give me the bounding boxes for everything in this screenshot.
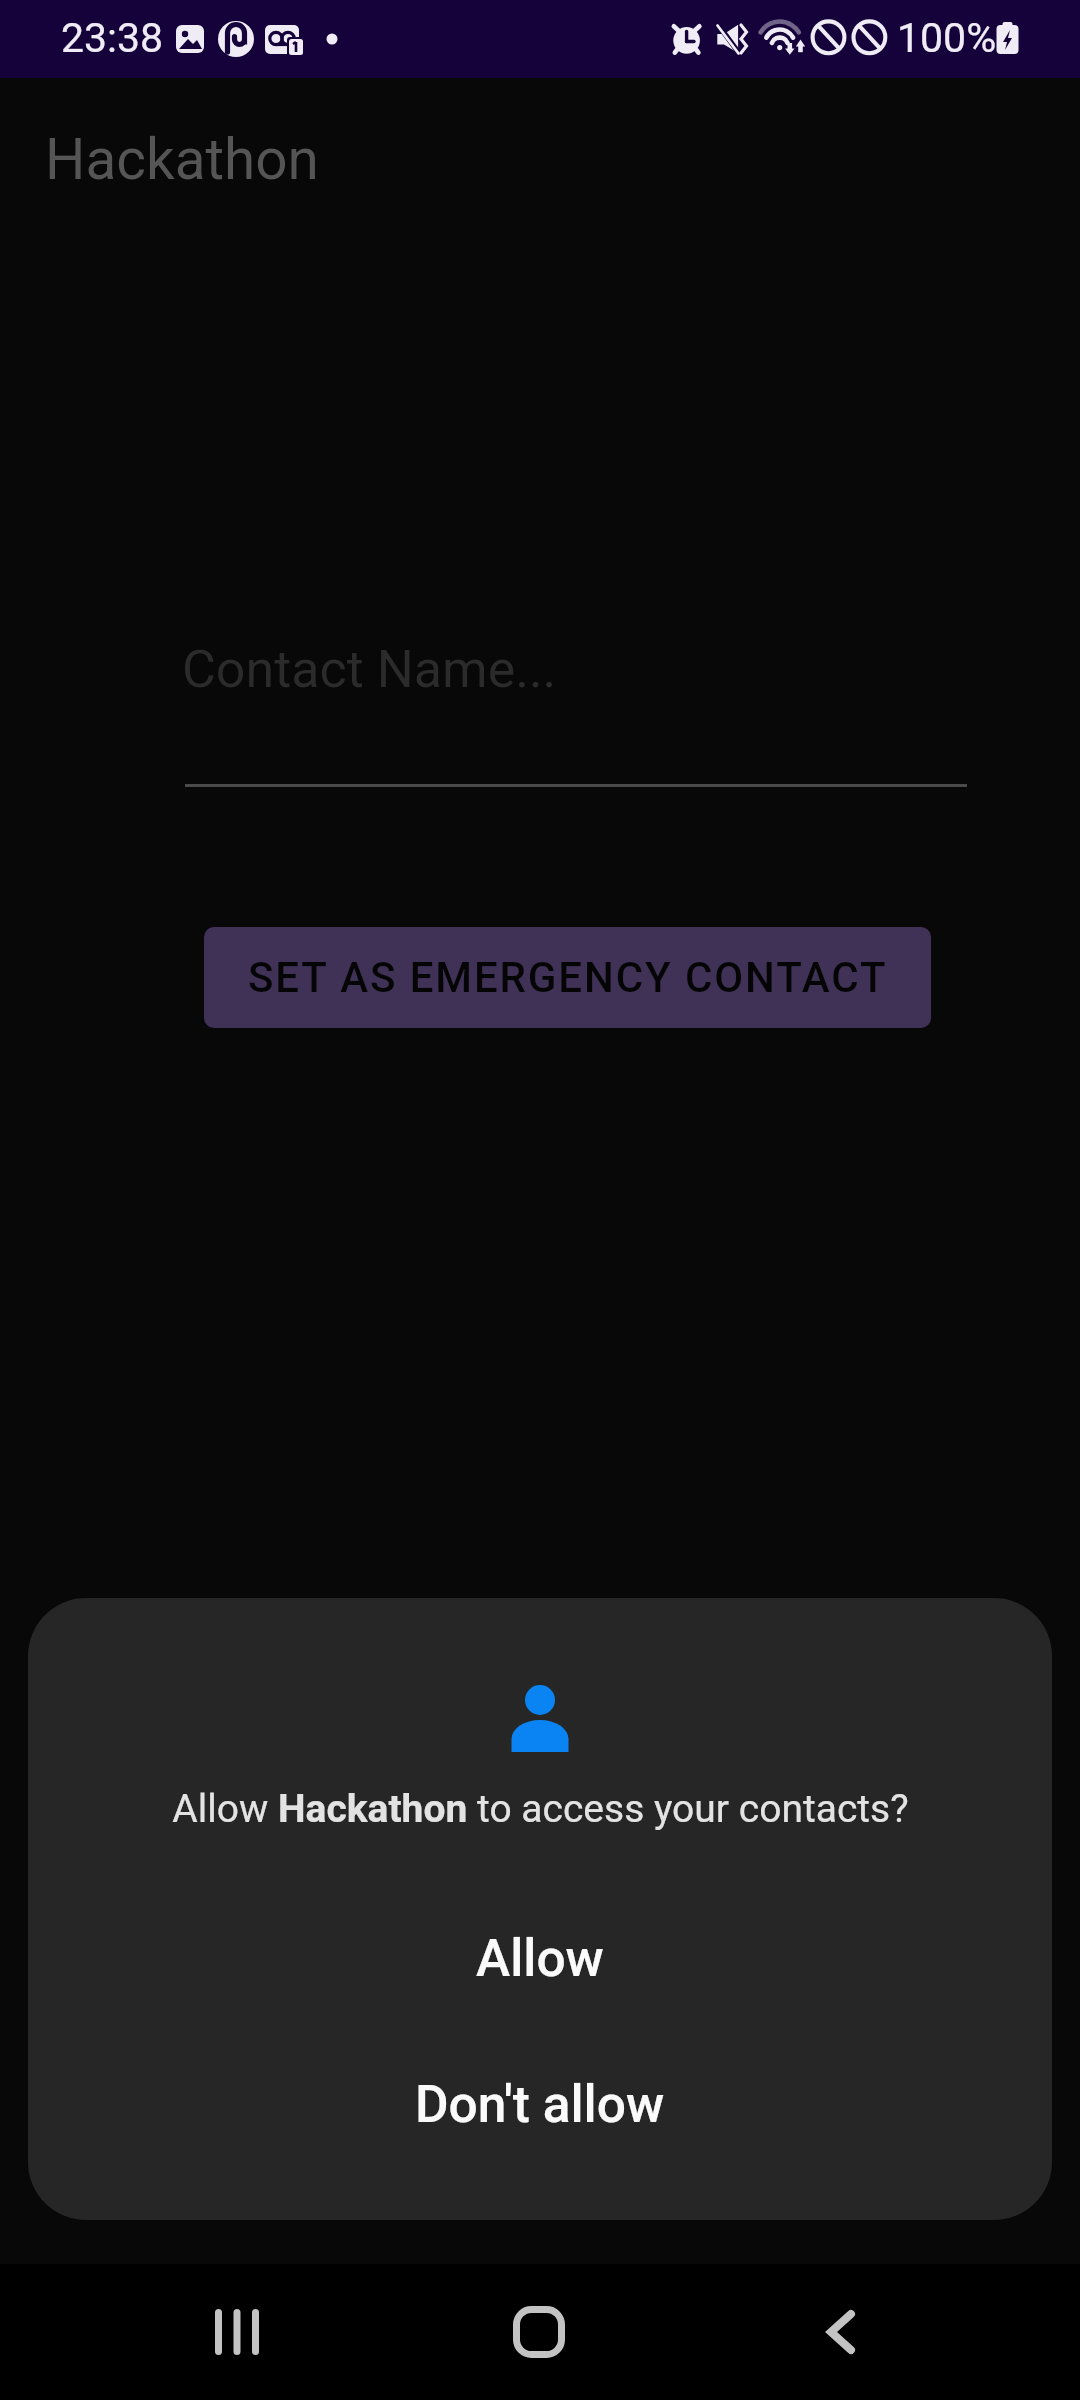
staticText: Allow <box>476 1928 604 1988</box>
staticText: 23:38 <box>61 14 164 62</box>
button[interactable]: Don't allow <box>28 2054 1052 2154</box>
staticText: Allow Hackathon to access your contacts? <box>172 1786 909 1832</box>
button[interactable]: Home <box>479 2264 599 2400</box>
button[interactable]: Allow <box>28 1908 1052 2008</box>
staticText: SET AS EMERGENCY CONTACT <box>248 953 888 1002</box>
button[interactable]: Recent apps <box>177 2264 297 2400</box>
staticText: Contact Name... <box>182 639 557 700</box>
staticText: Hackathon <box>45 126 319 192</box>
staticText: Don't allow <box>415 2074 665 2134</box>
staticText: 100% <box>897 14 997 62</box>
button[interactable]: Back <box>781 2264 901 2400</box>
button[interactable]: SET AS EMERGENCY CONTACT <box>204 927 931 1028</box>
